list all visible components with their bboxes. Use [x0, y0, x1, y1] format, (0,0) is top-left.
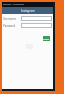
button[interactable] — [21, 16, 52, 21]
staticText: Register - Instagram — [3, 3, 24, 6]
button[interactable] — [21, 23, 52, 28]
button[interactable]: Login — [43, 36, 50, 41]
staticText: Instagram — [21, 9, 35, 13]
staticText: Password — [3, 24, 16, 28]
staticText: Username — [3, 17, 17, 21]
staticText: Login — [43, 37, 50, 40]
